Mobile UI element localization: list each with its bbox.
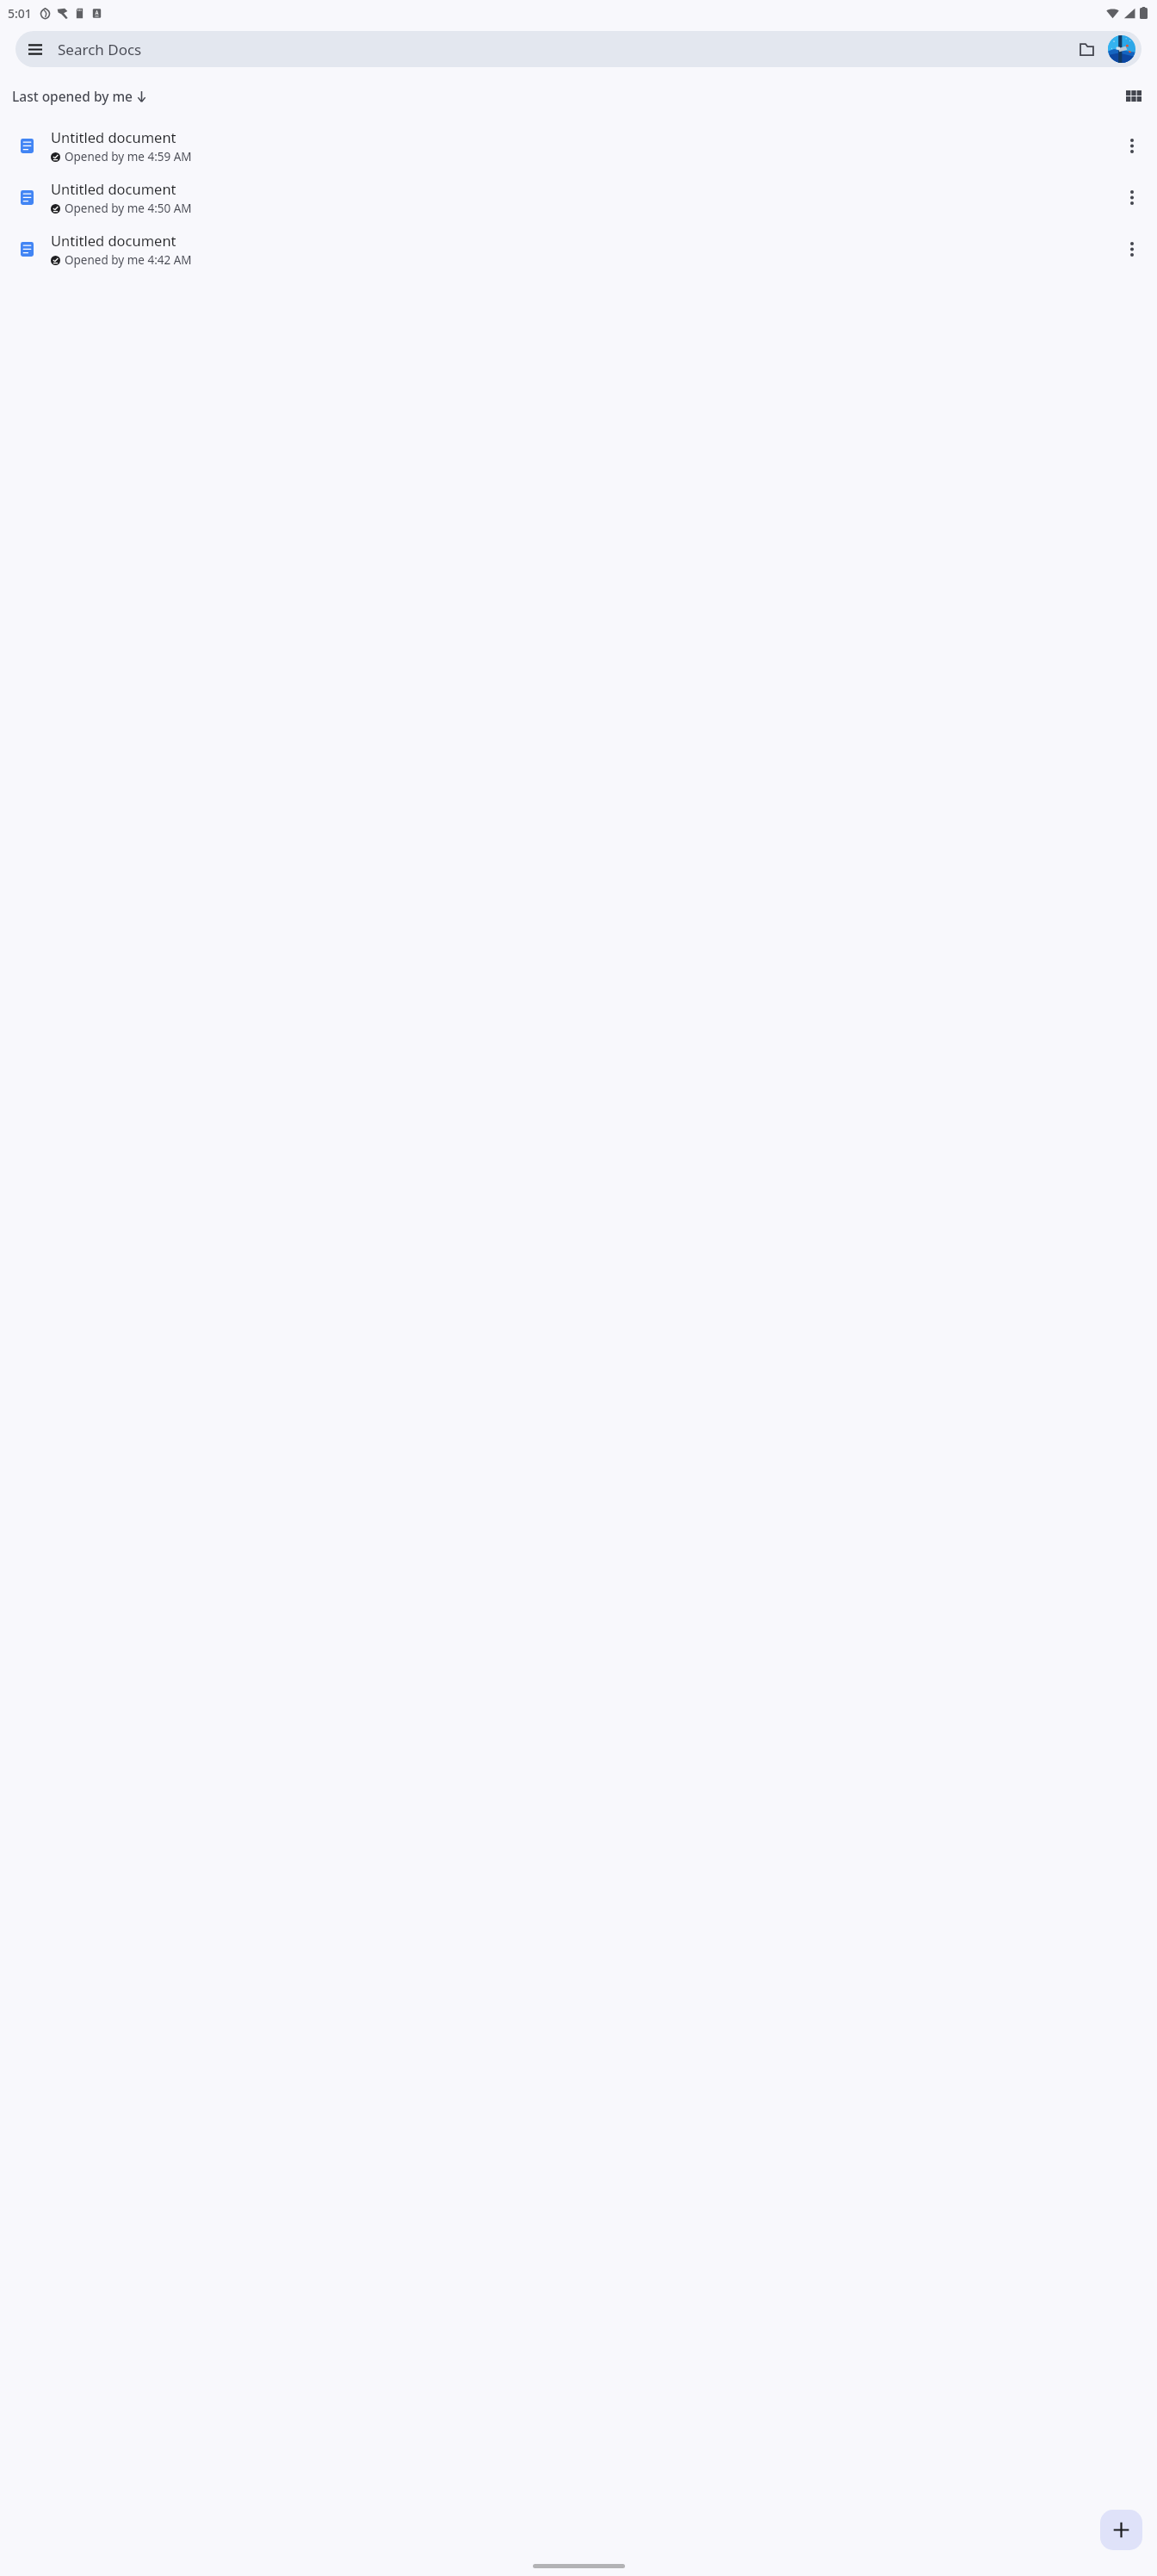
button[interactable]: Untitled document bbox=[0, 120, 1157, 171]
button[interactable]: Open navigation menu bbox=[19, 33, 52, 65]
staticText: Opened by me 4:42 AM bbox=[65, 252, 192, 268]
button[interactable]: More options bbox=[1112, 126, 1152, 165]
button[interactable]: Untitled document bbox=[0, 223, 1157, 275]
button[interactable]: Open navigation menu bbox=[15, 31, 1142, 67]
staticText: Untitled document bbox=[51, 231, 176, 250]
button[interactable]: More options bbox=[1112, 229, 1152, 269]
staticText: Untitled document bbox=[51, 127, 176, 146]
staticText: Opened by me 4:59 AM bbox=[65, 149, 192, 164]
button[interactable]: Last opened by me bbox=[6, 84, 152, 108]
staticText: 5:01 bbox=[8, 5, 32, 22]
staticText: Untitled document bbox=[51, 179, 176, 198]
button[interactable]: Browse folders bbox=[1070, 33, 1103, 65]
button[interactable]: Account bbox=[1106, 34, 1137, 65]
staticText: Opened by me 4:50 AM bbox=[65, 201, 192, 216]
staticText: Last opened by me bbox=[12, 87, 133, 105]
staticText: Search Docs bbox=[58, 40, 1070, 59]
button[interactable]: More options bbox=[1112, 177, 1152, 217]
button[interactable]: Switch to grid view bbox=[1117, 80, 1151, 111]
button[interactable]: Untitled document bbox=[0, 171, 1157, 223]
button[interactable]: Create new document bbox=[1100, 2510, 1142, 2550]
